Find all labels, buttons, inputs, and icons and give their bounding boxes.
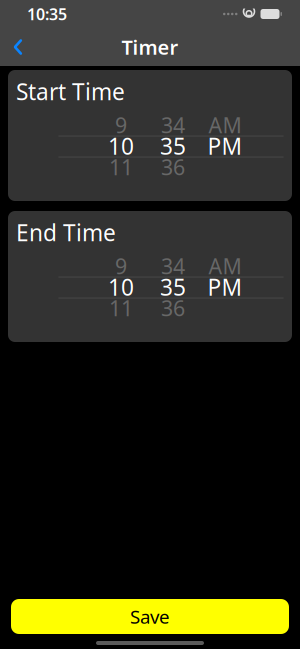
staticText: AM (208, 111, 241, 139)
staticText: 11 (109, 294, 133, 322)
staticText: 10 (108, 272, 134, 302)
staticText: 35 (160, 131, 186, 161)
staticText: Save (130, 604, 170, 629)
button[interactable]: Save (11, 599, 289, 634)
staticText: 34 (161, 111, 185, 139)
staticText: End Time (16, 217, 116, 247)
staticText: 9 (115, 252, 127, 280)
staticText: 11 (109, 153, 133, 181)
button[interactable]: Back (0, 28, 36, 66)
staticText: AM (208, 252, 241, 280)
staticText: 35 (160, 272, 186, 302)
staticText: 36 (161, 294, 185, 322)
staticText: 9 (115, 111, 127, 139)
staticText: 34 (161, 252, 185, 280)
staticText: PM (207, 131, 242, 161)
staticText: 36 (161, 153, 185, 181)
staticText: Timer (121, 34, 178, 60)
staticText: 10:35 (27, 3, 67, 25)
staticText: PM (207, 272, 242, 302)
staticText: Start Time (16, 76, 125, 106)
staticText: 10 (108, 131, 134, 161)
